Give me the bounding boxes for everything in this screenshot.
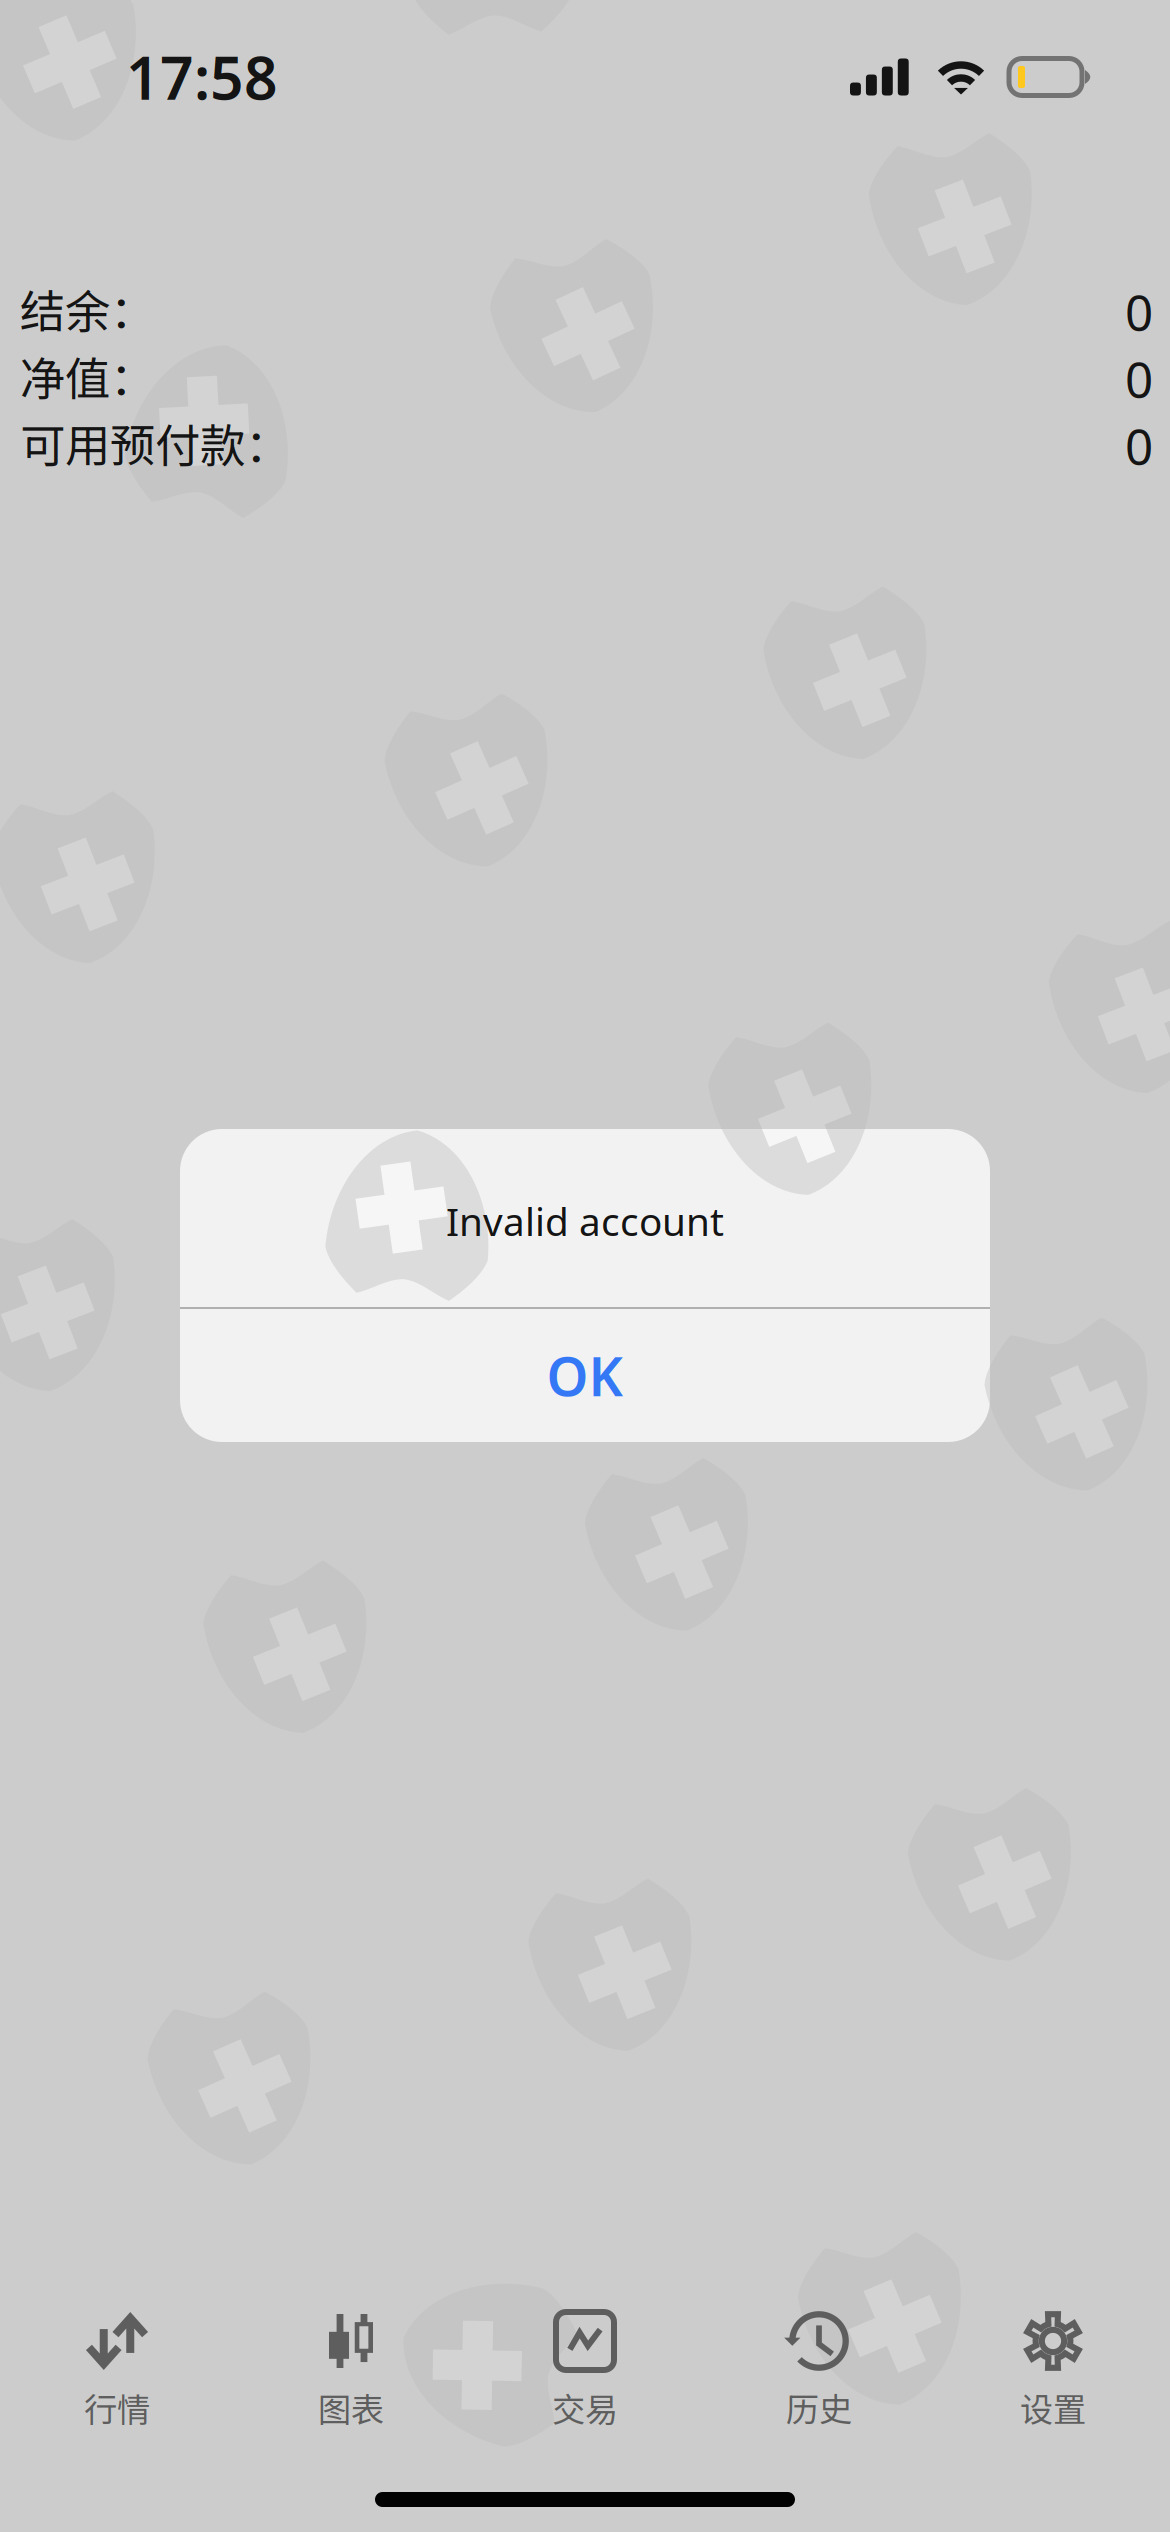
button[interactable]: 行情 (0, 2313, 234, 2422)
staticText: 净值： (20, 343, 155, 408)
staticText: 交易 (552, 2383, 618, 2432)
staticText: 结余： (20, 276, 155, 341)
staticText: Invalid account (446, 1195, 724, 1247)
staticText: 设置 (1020, 2383, 1086, 2432)
staticText: 0 (1125, 413, 1153, 478)
button[interactable]: OK (180, 1309, 990, 1442)
button[interactable]: 历史 (702, 2313, 936, 2422)
staticText: 17:58 (126, 38, 278, 116)
staticText: 0 (1125, 346, 1153, 411)
staticText: 可用预付款： (20, 410, 290, 475)
staticText: 历史 (786, 2383, 852, 2432)
staticText: 图表 (318, 2383, 384, 2432)
button[interactable]: 图表 (234, 2313, 468, 2422)
staticText: 0 (1125, 279, 1153, 344)
button[interactable]: 交易 (468, 2313, 702, 2422)
button[interactable]: 设置 (936, 2313, 1170, 2422)
staticText: OK (546, 1340, 623, 1411)
staticText: 行情 (84, 2383, 150, 2432)
